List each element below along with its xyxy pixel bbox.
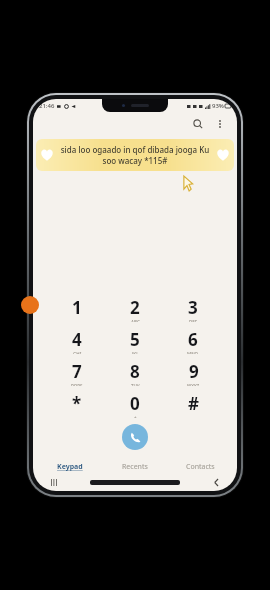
button[interactable]: Home	[90, 480, 180, 485]
staticText: TUV	[131, 383, 140, 386]
staticText: sida loo ogaado in qof dibada jooga Ku s…	[55, 144, 215, 166]
staticText: 1	[72, 296, 82, 319]
staticText: 9	[189, 360, 199, 383]
staticText: 3	[188, 296, 198, 319]
button[interactable]: sida loo ogaado in qof dibada jooga Ku s…	[36, 139, 234, 171]
staticText: DEF	[189, 319, 198, 322]
staticText: #	[188, 392, 199, 415]
staticText: MNO	[187, 351, 199, 354]
staticText: 93%	[212, 102, 224, 110]
button[interactable]: Back	[209, 476, 223, 488]
button[interactable]: 2	[113, 296, 157, 322]
staticText: 8	[130, 360, 140, 383]
staticText: *	[72, 392, 82, 415]
button[interactable]: Call	[122, 424, 148, 450]
staticText: GHI	[73, 351, 82, 354]
staticText: 5	[130, 328, 140, 351]
staticText: PQRS	[71, 383, 83, 386]
button[interactable]: Search	[189, 115, 207, 133]
button[interactable]: More options	[211, 115, 229, 133]
button[interactable]: Badge	[21, 296, 39, 314]
button[interactable]: 1	[55, 296, 99, 322]
button[interactable]: Contacts	[171, 460, 229, 474]
button[interactable]: 6	[171, 328, 215, 354]
staticText: +	[134, 415, 137, 418]
staticText: Contacts	[186, 462, 215, 472]
button[interactable]: *	[55, 392, 99, 418]
button[interactable]: 7	[55, 360, 99, 386]
staticText: 6	[188, 328, 198, 351]
button[interactable]: #	[171, 392, 215, 418]
button[interactable]: 8	[113, 360, 157, 386]
button[interactable]: 9	[171, 360, 215, 386]
button[interactable]: 0	[113, 392, 157, 418]
staticText: 2	[130, 296, 140, 319]
button[interactable]: Keypad	[41, 460, 99, 474]
staticText: JKL	[132, 351, 139, 354]
staticText: 7	[72, 360, 82, 383]
button[interactable]: Recents	[106, 460, 164, 474]
staticText: WXYZ	[187, 383, 200, 386]
button[interactable]: 5	[113, 328, 157, 354]
staticText: Recents	[122, 462, 148, 472]
staticText: 4	[72, 328, 82, 351]
staticText: 0	[130, 392, 140, 415]
staticText: Keypad	[57, 462, 83, 472]
button[interactable]: 4	[55, 328, 99, 354]
button[interactable]: Recents	[47, 476, 61, 488]
button[interactable]: 3	[171, 296, 215, 322]
staticText: ABC	[131, 319, 140, 322]
staticText: 21:46	[39, 102, 55, 110]
